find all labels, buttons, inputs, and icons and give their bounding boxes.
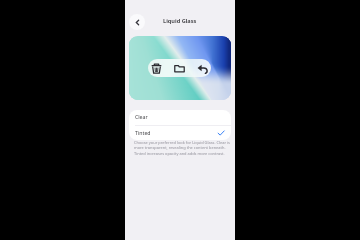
button[interactable]: Delete (148, 60, 165, 77)
button[interactable]: Tinted (129, 126, 231, 140)
staticText: Liquid Glass (163, 17, 197, 25)
staticText: Choose your preferred look for Liquid Gl… (134, 140, 231, 156)
staticText: Tinted (135, 130, 151, 137)
button[interactable]: Back (129, 14, 145, 30)
button[interactable]: Reply (194, 60, 211, 77)
button[interactable]: Archive (171, 60, 188, 77)
button[interactable]: Clear (129, 110, 231, 125)
staticText: Clear (135, 114, 148, 121)
